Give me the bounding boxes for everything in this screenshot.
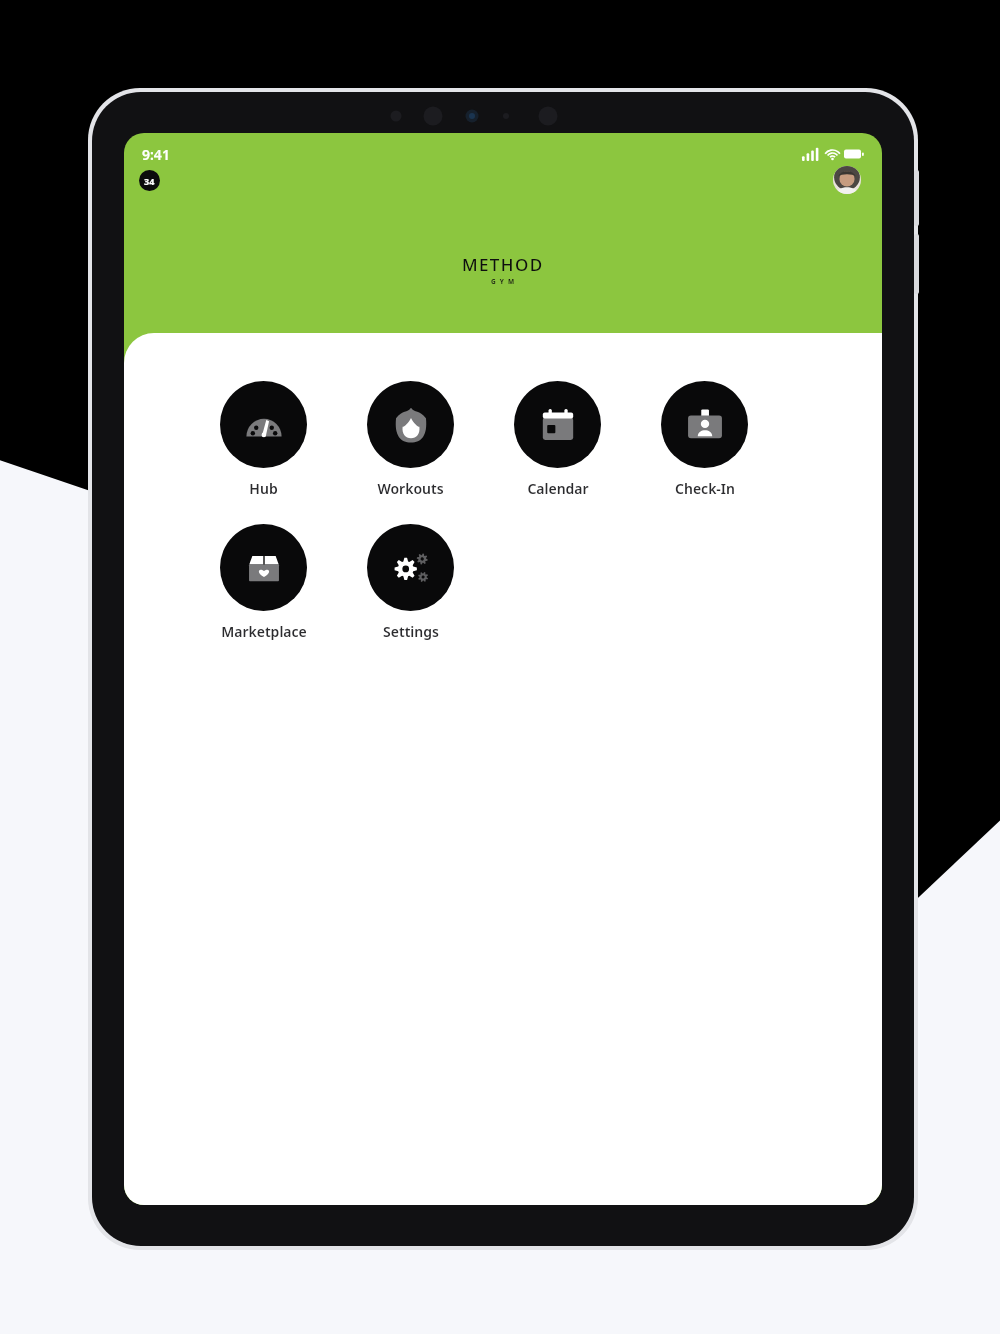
button[interactable]: Settings	[337, 524, 484, 641]
staticText: Calendar	[527, 479, 589, 498]
staticText: METHOD	[462, 253, 544, 276]
staticText: 9:41	[142, 145, 170, 164]
button[interactable]: Calendar	[484, 381, 631, 498]
button[interactable]: Workouts	[337, 381, 484, 498]
staticText: Workouts	[377, 479, 444, 498]
staticText: Hub	[249, 479, 278, 498]
staticText: 34	[144, 175, 155, 187]
staticText: Check-In	[675, 479, 735, 498]
button[interactable]: Profile	[833, 166, 861, 194]
button[interactable]: Marketplace	[190, 524, 337, 641]
button[interactable]: Notifications, 34	[139, 170, 160, 191]
button[interactable]: Check-In	[631, 381, 778, 498]
button[interactable]: Hub	[190, 381, 337, 498]
staticText: Settings	[383, 622, 439, 641]
staticText: Marketplace	[221, 622, 307, 641]
staticText: G Y M	[491, 277, 516, 286]
